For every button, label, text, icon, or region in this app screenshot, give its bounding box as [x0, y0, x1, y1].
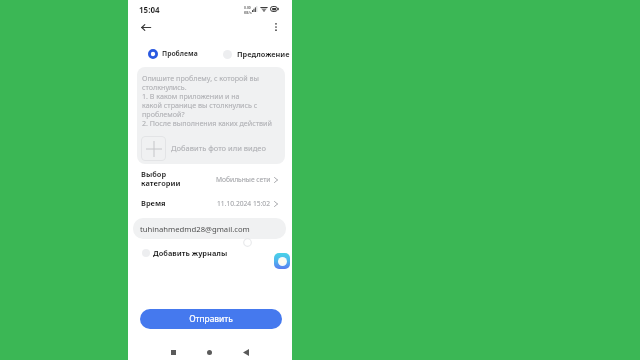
- staticText: 0.00: [244, 5, 251, 10]
- button[interactable]: Добавить журналы: [142, 245, 228, 261]
- staticText: Предложение: [237, 49, 290, 59]
- button[interactable]: Выбор категории: [128, 169, 292, 191]
- staticText: 15:04: [139, 4, 160, 15]
- staticText: Добавить журналы: [153, 248, 228, 258]
- button[interactable]: Проблема: [148, 46, 198, 62]
- button[interactable]: Добавить фото или видео: [141, 136, 266, 161]
- button[interactable]: Предложение: [223, 46, 290, 62]
- button[interactable]: tuhinahmedmd28@gmail.com: [133, 218, 286, 239]
- button[interactable]: Опишите проблему, с которой вы столкнули…: [137, 67, 285, 164]
- staticText: 11.10.2024 15:02: [217, 199, 271, 208]
- button[interactable]: Back: [239, 345, 253, 359]
- staticText: Мобильные сети: [216, 175, 271, 184]
- staticText: Добавить фото или видео: [171, 143, 266, 153]
- button[interactable]: Отправить: [140, 309, 282, 329]
- button[interactable]: Back: [133, 17, 159, 37]
- staticText: KB/s: [244, 10, 252, 15]
- button[interactable]: Home: [202, 345, 216, 359]
- staticText: Проблема: [162, 49, 198, 58]
- button[interactable]: Время: [128, 198, 292, 220]
- button[interactable]: Assistant: [274, 253, 290, 269]
- staticText: Время: [141, 198, 166, 208]
- button[interactable]: Recents: [166, 345, 180, 359]
- staticText: Выбор категории: [141, 169, 181, 188]
- staticText: tuhinahmedmd28@gmail.com: [140, 224, 250, 234]
- button[interactable]: More options: [266, 17, 286, 37]
- staticText: Отправить: [189, 313, 233, 324]
- staticText: Опишите проблему, с которой вы столкнули…: [142, 73, 272, 128]
